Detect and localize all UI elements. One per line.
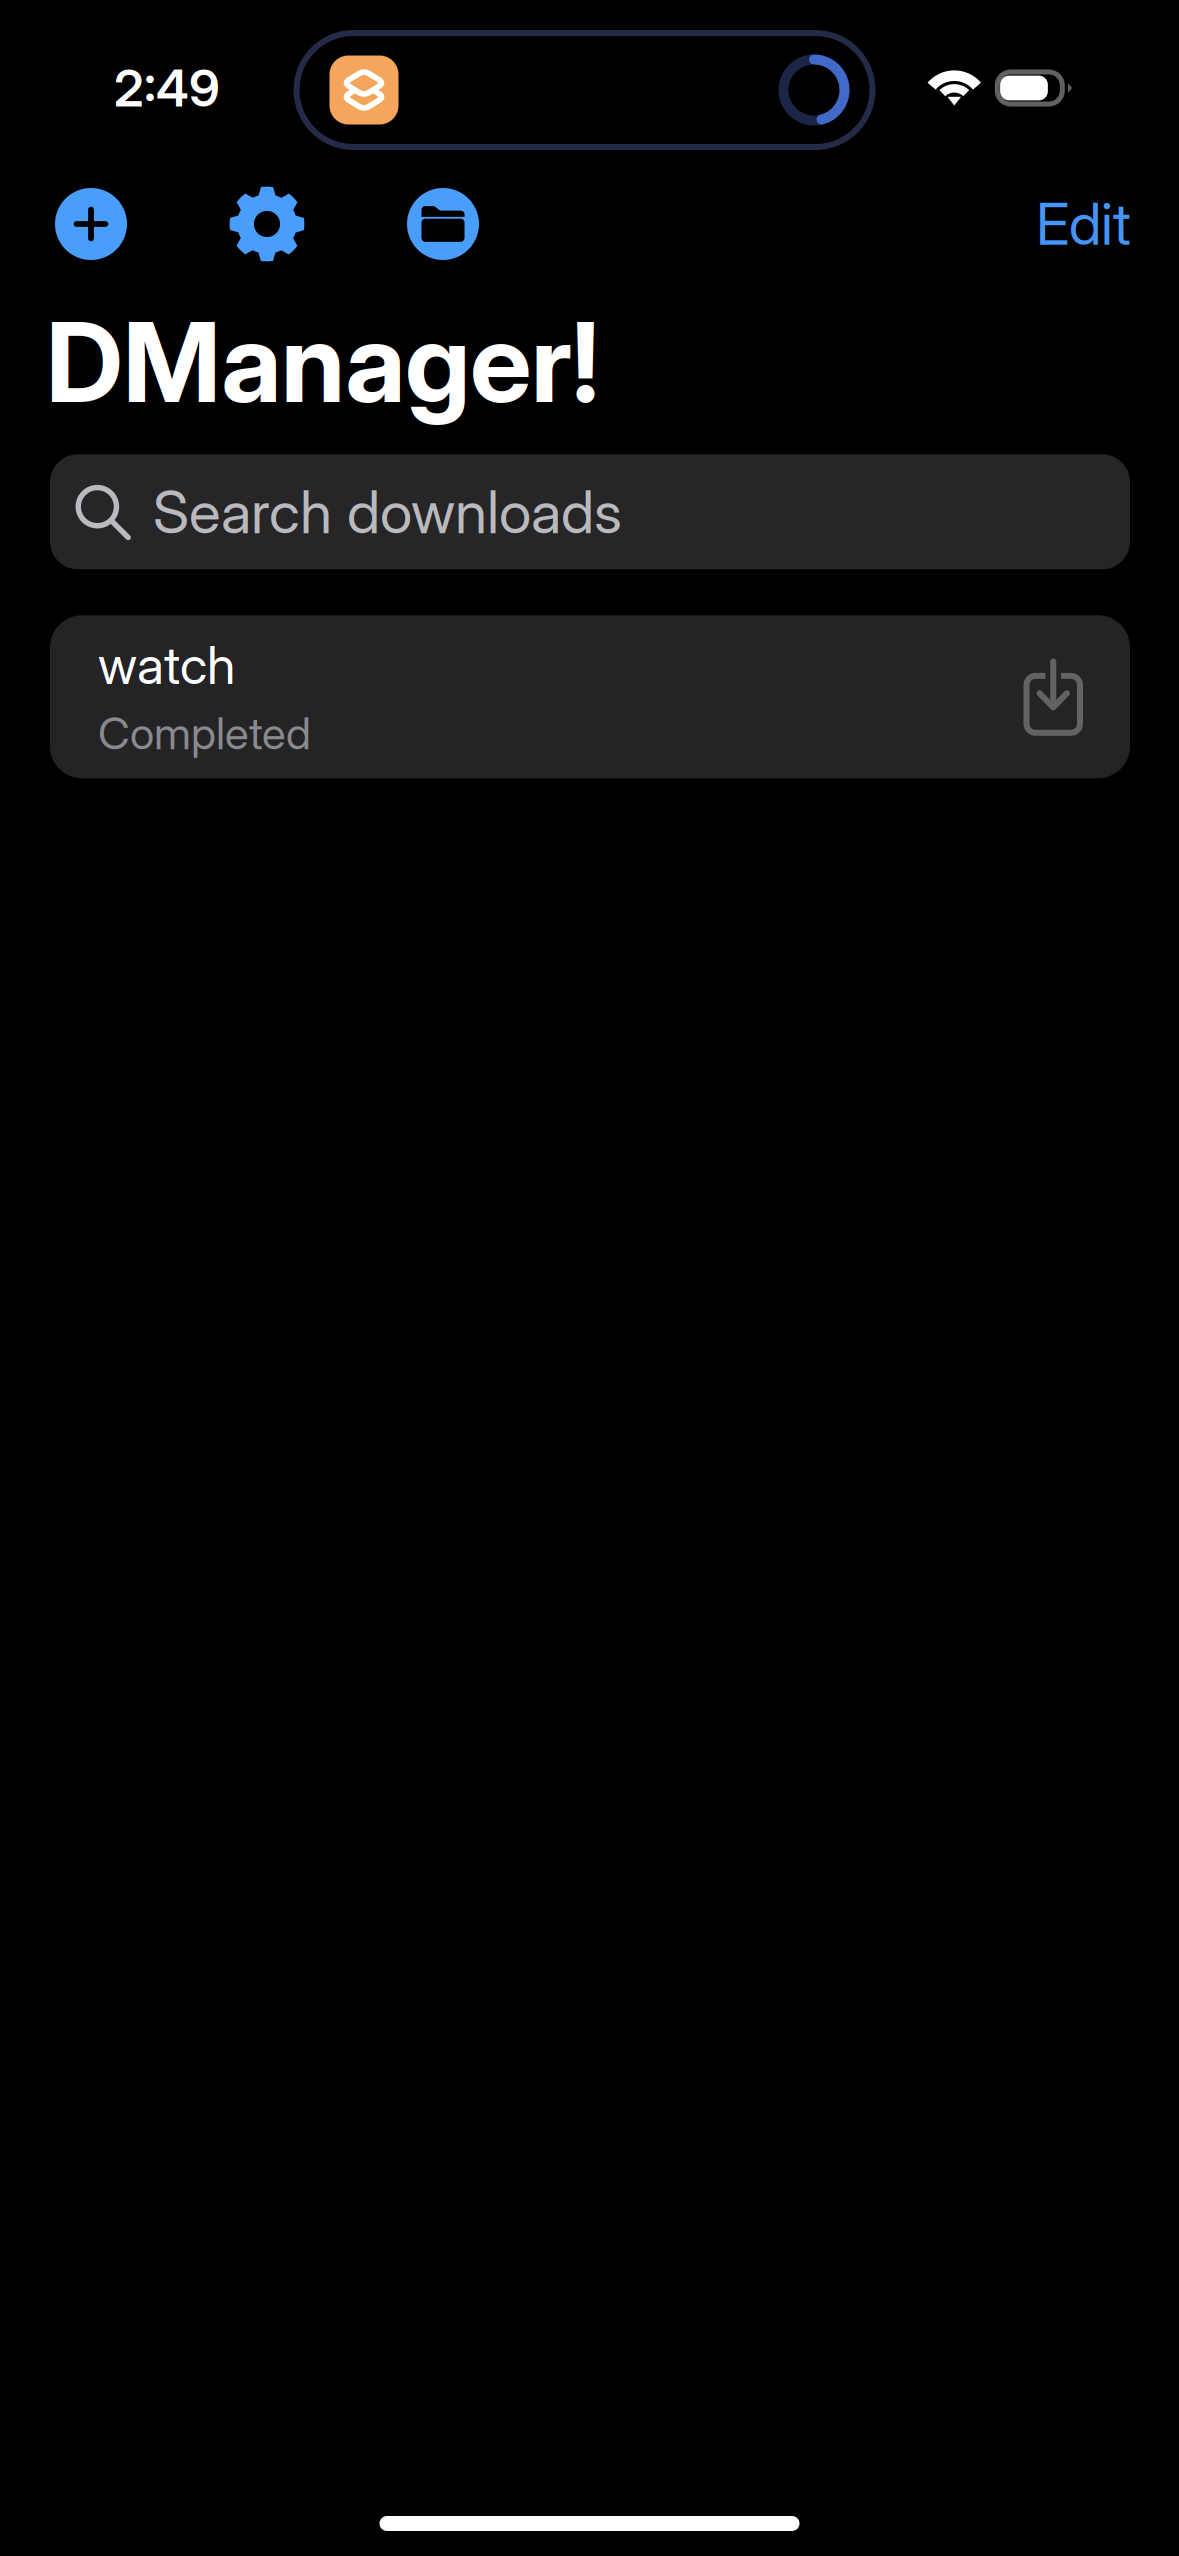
staticText: DManager!	[46, 296, 599, 428]
staticText: watch	[98, 634, 235, 697]
button[interactable]: Edit	[1036, 176, 1131, 272]
staticText: Edit	[1036, 189, 1131, 259]
staticText: Completed	[98, 707, 311, 760]
button[interactable]: Files	[395, 176, 491, 272]
staticText: 2:49	[114, 57, 220, 119]
button[interactable]: Add download	[43, 176, 139, 272]
staticText: Search downloads	[153, 476, 622, 547]
button[interactable]: watch	[50, 615, 1130, 778]
button[interactable]: Settings	[219, 176, 315, 272]
